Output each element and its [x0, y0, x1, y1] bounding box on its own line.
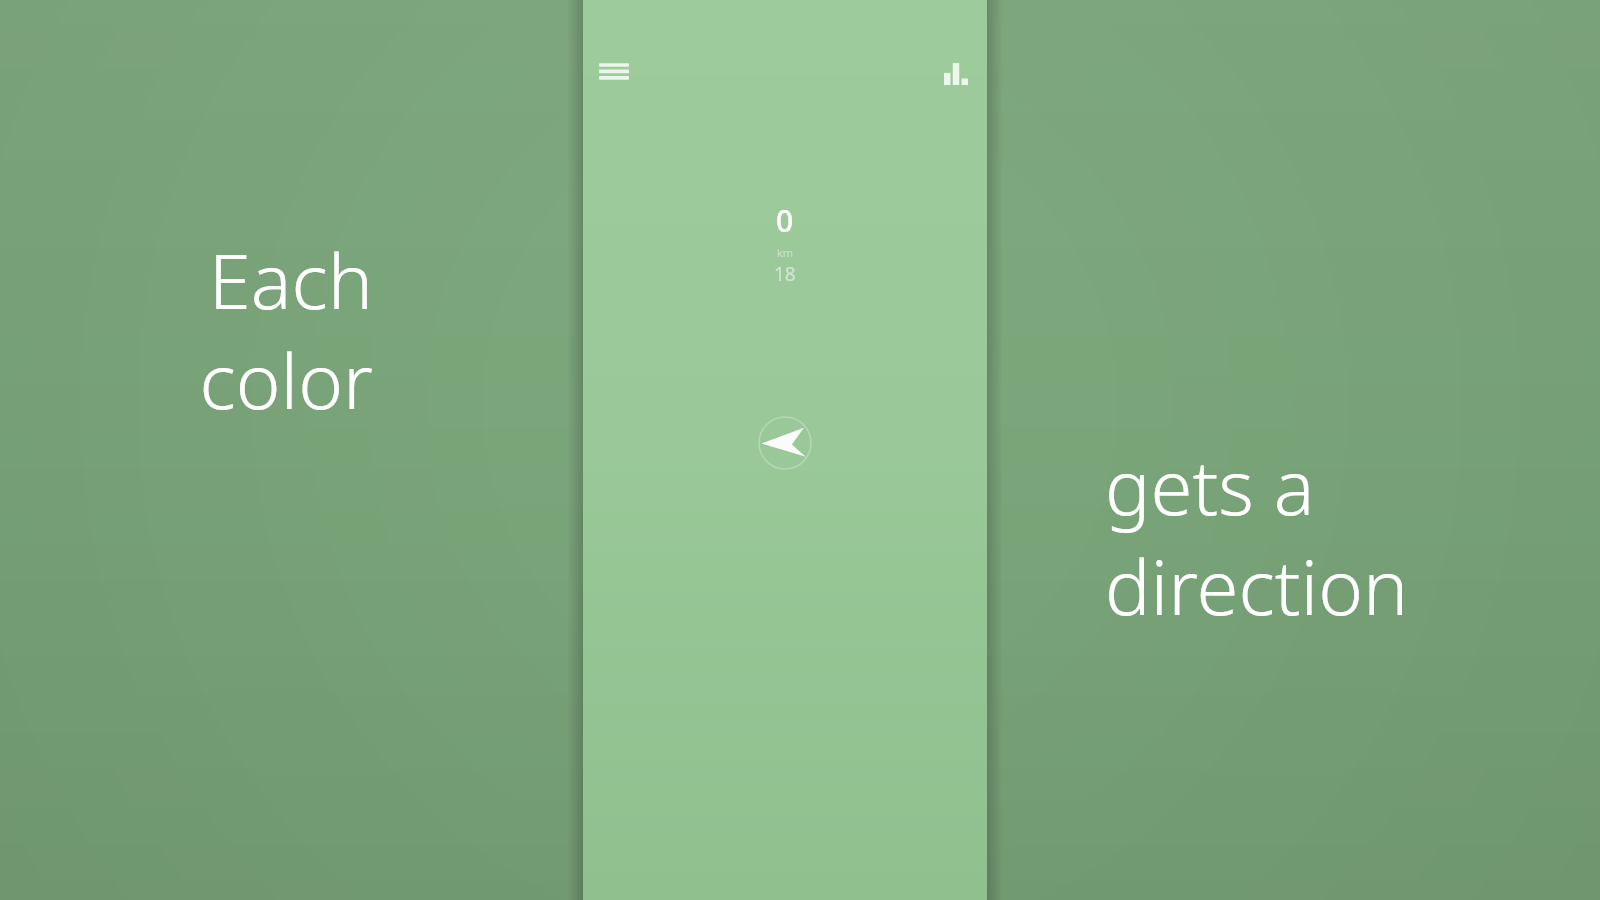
- button[interactable]: Direction compass: [735, 393, 835, 493]
- staticText: 0: [776, 200, 794, 241]
- staticText: Each color: [60, 228, 373, 432]
- staticText: 18: [774, 261, 796, 287]
- staticText: gets a direction: [1105, 434, 1565, 638]
- button[interactable]: Open navigation menu: [586, 46, 642, 102]
- button[interactable]: Statistics: [928, 46, 984, 102]
- staticText: km: [777, 245, 794, 260]
